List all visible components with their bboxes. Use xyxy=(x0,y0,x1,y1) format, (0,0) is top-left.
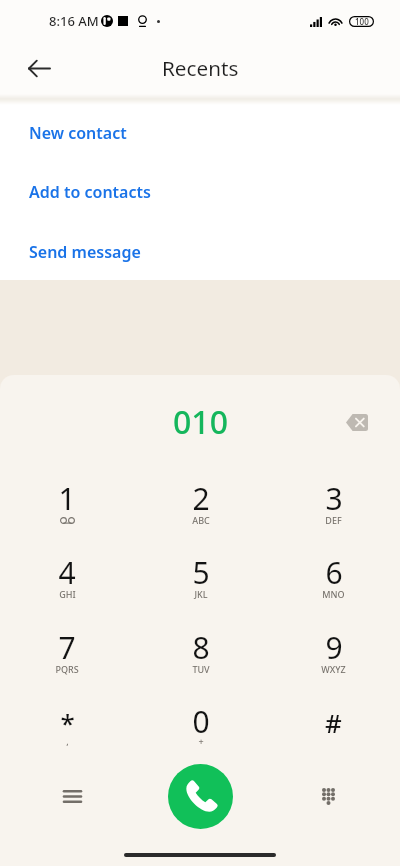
staticText: 2 xyxy=(192,478,210,512)
button[interactable]: Backspace xyxy=(339,404,375,440)
staticText: MNO xyxy=(322,588,345,600)
button[interactable]: 3 xyxy=(267,467,400,542)
staticText: TUV xyxy=(192,663,210,675)
staticText: 8:16 AM xyxy=(49,12,99,30)
staticText: GHI xyxy=(59,588,76,600)
staticText: 8 xyxy=(192,627,210,661)
staticText: 3 xyxy=(325,478,343,512)
staticText: New contact xyxy=(29,122,127,144)
button[interactable]: 0 xyxy=(134,690,267,765)
button[interactable]: Add to contacts xyxy=(0,168,400,216)
staticText: Recents xyxy=(162,54,239,82)
button[interactable]: 4 xyxy=(0,541,134,616)
staticText: PQRS xyxy=(55,663,79,675)
staticText: # xyxy=(325,705,342,739)
button[interactable]: 1 xyxy=(0,467,134,542)
staticText: ABC xyxy=(192,514,210,526)
button[interactable]: Call xyxy=(168,764,233,829)
staticText: Send message xyxy=(29,241,141,263)
staticText: , xyxy=(66,735,69,747)
staticText: JKL xyxy=(194,588,208,600)
staticText: 7 xyxy=(58,627,76,661)
staticText: DEF xyxy=(325,514,342,526)
staticText: 6 xyxy=(325,552,343,586)
button[interactable]: 8 xyxy=(134,616,267,691)
button[interactable]: New contact xyxy=(0,109,400,157)
button[interactable]: Call log xyxy=(51,775,93,817)
staticText: 9 xyxy=(325,627,343,661)
staticText: 100 xyxy=(355,16,369,27)
staticText: 010 xyxy=(173,400,228,444)
button[interactable]: # xyxy=(267,690,400,765)
staticText: 0 xyxy=(192,701,210,735)
button[interactable]: 9 xyxy=(267,616,400,691)
button[interactable]: 5 xyxy=(134,541,267,616)
button[interactable]: Back xyxy=(18,47,60,89)
button[interactable]: * xyxy=(0,690,134,765)
staticText: Add to contacts xyxy=(29,181,151,203)
staticText: WXYZ xyxy=(321,663,346,675)
button[interactable]: Dialpad xyxy=(307,775,349,817)
staticText: 5 xyxy=(192,552,210,586)
staticText: 1 xyxy=(58,478,76,512)
button[interactable]: 6 xyxy=(267,541,400,616)
staticText: 4 xyxy=(58,552,76,586)
button[interactable]: Send message xyxy=(0,228,400,276)
button[interactable]: 7 xyxy=(0,616,134,691)
staticText: * xyxy=(60,705,75,739)
button[interactable]: 2 xyxy=(134,467,267,542)
staticText: + xyxy=(198,735,204,747)
